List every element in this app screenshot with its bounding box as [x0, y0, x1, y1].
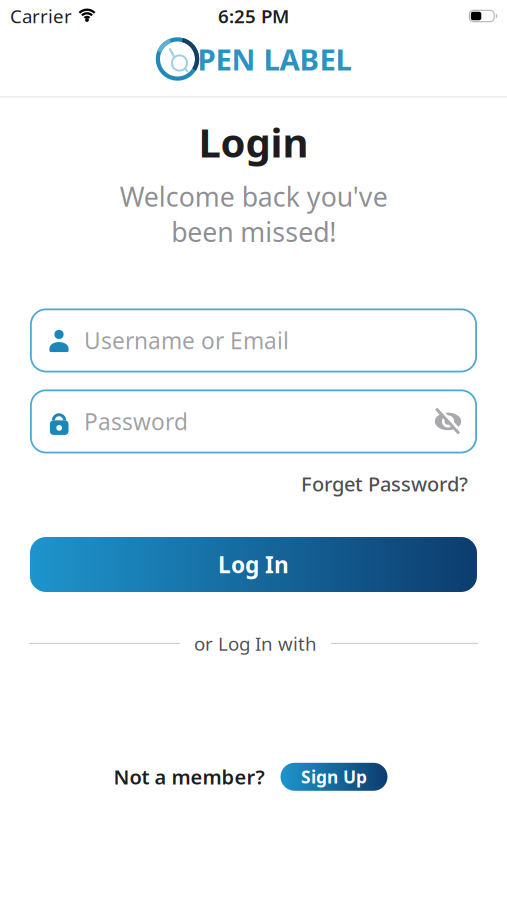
staticText: PEN LABEL	[197, 39, 351, 78]
staticText: Password	[84, 406, 188, 436]
staticText: Log In	[218, 549, 289, 580]
button[interactable]: Password	[30, 389, 477, 453]
button[interactable]: Sign Up	[280, 763, 387, 791]
staticText: Username or Email	[84, 325, 289, 355]
staticText: Welcome back you've been missed!	[119, 179, 387, 249]
staticText: Carrier	[10, 4, 72, 28]
button[interactable]: Log In	[30, 537, 477, 592]
staticText: Forget Password?	[301, 470, 468, 497]
staticText: 6:25 PM	[218, 4, 289, 28]
staticText: Not a member?	[113, 763, 264, 790]
staticText: or Log In with	[194, 631, 317, 656]
button[interactable]: Forget Password?	[301, 470, 468, 497]
staticText: Sign Up	[301, 765, 367, 788]
button[interactable]: Username or Email	[30, 308, 477, 372]
staticText: Login	[198, 115, 308, 169]
